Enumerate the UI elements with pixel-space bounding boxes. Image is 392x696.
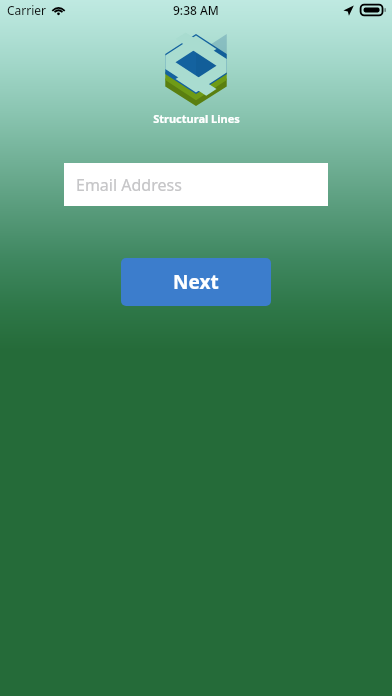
- staticText: Carrier: [7, 2, 47, 18]
- other: Location: [343, 5, 354, 16]
- other: Battery: [360, 4, 386, 16]
- staticText: Structural Lines: [153, 111, 240, 126]
- staticText: 9:38 AM: [173, 2, 219, 18]
- staticText: Next: [173, 269, 219, 295]
- other: Wi-Fi: [52, 5, 65, 15]
- button[interactable]: Next: [121, 258, 271, 306]
- other: Structural Lines logo: [164, 34, 228, 106]
- button[interactable]: Email Address: [64, 163, 328, 206]
- staticText: Email Address: [76, 174, 182, 196]
